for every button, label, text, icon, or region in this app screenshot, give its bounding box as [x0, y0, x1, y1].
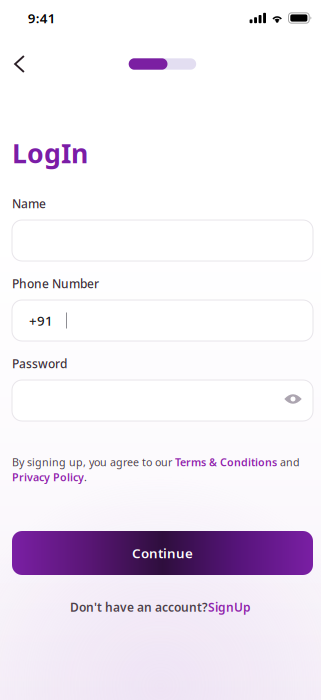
staticText: Password [12, 355, 67, 371]
staticText: 9:41 [28, 9, 56, 27]
button[interactable]: Back [4, 48, 36, 80]
staticText: By signing up, you agree to our [12, 455, 175, 469]
button[interactable]: Show password [277, 383, 309, 415]
button[interactable]: Terms & Conditions [175, 455, 277, 469]
button[interactable]: Don't have an account? [0, 598, 321, 616]
staticText: Name [12, 195, 46, 211]
staticText: LogIn [12, 135, 88, 171]
staticText: +91 [29, 312, 53, 329]
staticText: . [84, 470, 87, 484]
staticText: Don't have an account? [70, 599, 208, 615]
staticText: and [277, 455, 300, 469]
staticText: Privacy Policy [12, 470, 84, 484]
staticText: SignUp [208, 599, 251, 615]
staticText: Terms & Conditions [175, 455, 277, 469]
staticText: Continue [132, 544, 193, 562]
button[interactable]: Privacy Policy [12, 470, 84, 484]
staticText: Phone Number [12, 275, 99, 291]
button[interactable]: Continue [12, 531, 313, 575]
